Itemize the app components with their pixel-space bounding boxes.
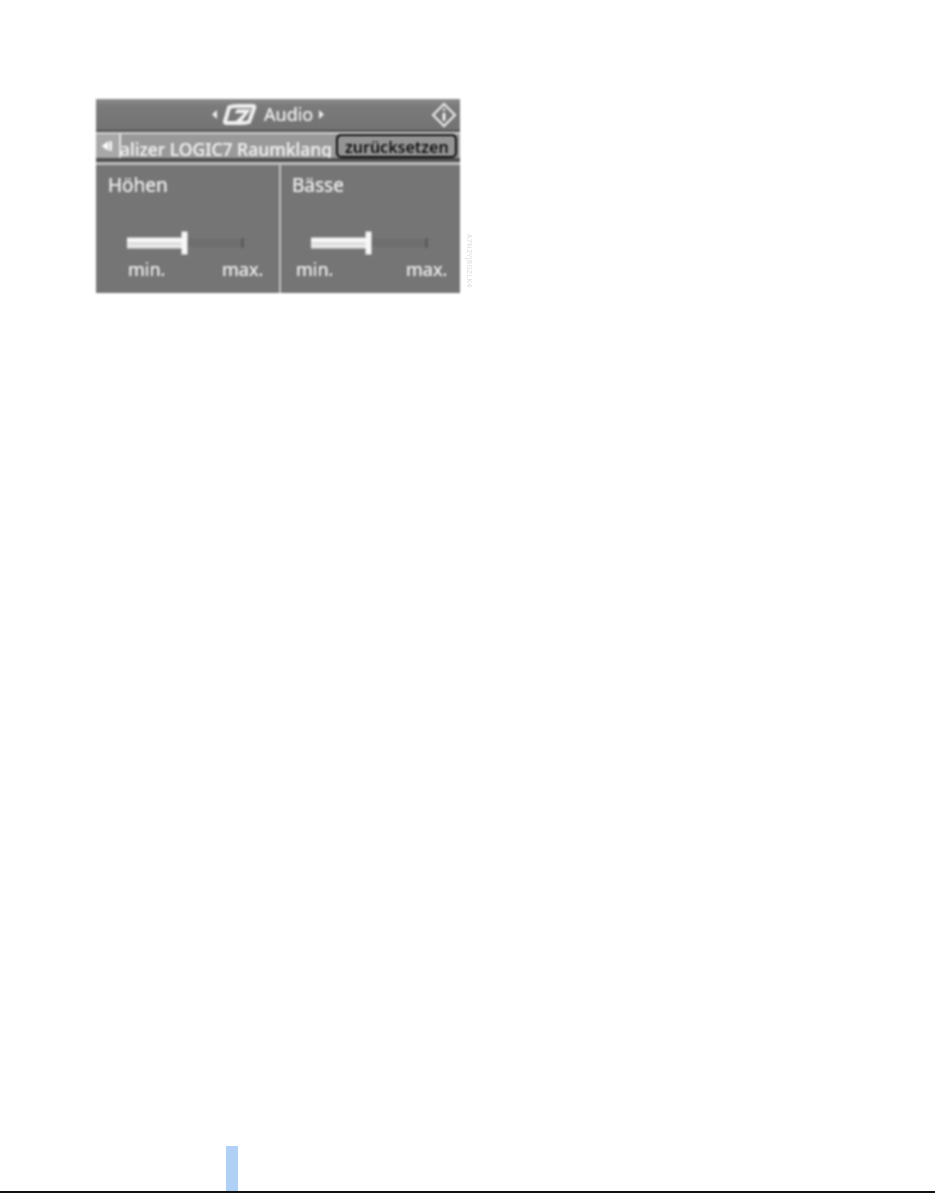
staticText: min. [128, 257, 166, 282]
staticText: max. [406, 257, 448, 282]
button[interactable]: zurücksetzen [338, 136, 455, 156]
button[interactable]: Bässe slider [310, 226, 427, 260]
staticText: min. [296, 257, 334, 282]
button[interactable]: Bässe [292, 172, 344, 198]
button[interactable]: Back [96, 134, 118, 158]
staticText: Audio [264, 102, 314, 127]
button[interactable]: Höhen slider [126, 226, 243, 260]
button[interactable]: Audio [212, 99, 324, 130]
staticText: max. [222, 257, 264, 282]
staticText: A7N2YJ8GZLK4 [464, 234, 474, 288]
button[interactable]: Höhen [108, 172, 168, 198]
staticText: zurücksetzen [345, 136, 449, 156]
button[interactable]: alizer LOGIC7 Raumklang [120, 134, 333, 158]
button[interactable]: Info [431, 102, 457, 128]
